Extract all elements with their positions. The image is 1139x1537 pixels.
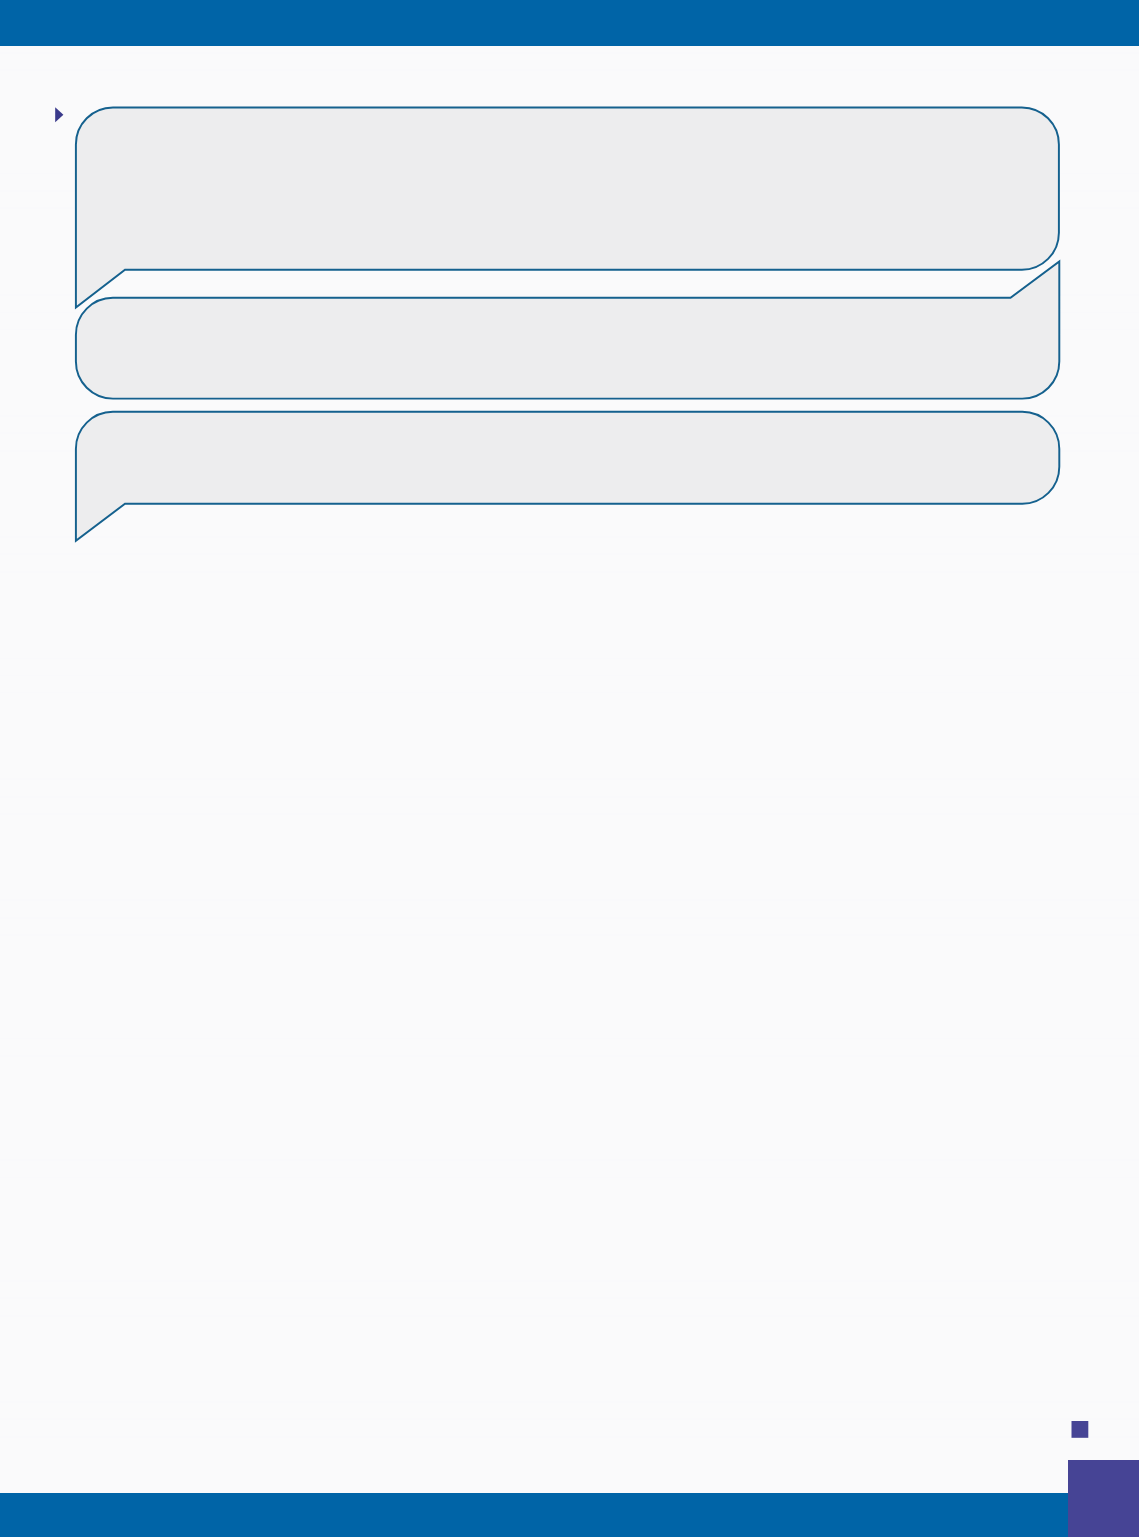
button[interactable]: Expand outline item [50,104,68,126]
button[interactable]: Second callout [74,296,1059,400]
button[interactable]: Third callout [74,410,1059,505]
button[interactable]: Page marker [1068,1418,1092,1442]
button[interactable]: First callout [74,106,1059,270]
button[interactable]: Footer banner [0,1492,1139,1537]
